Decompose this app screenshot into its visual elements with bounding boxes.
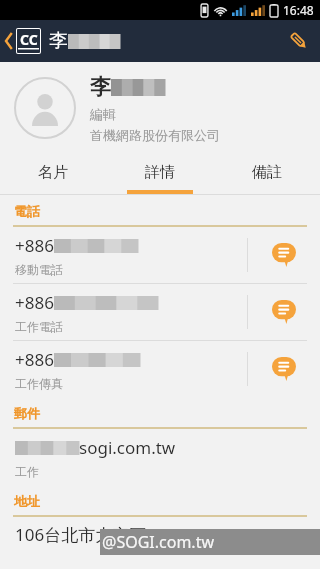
- staticText: sogi.com.tw: [79, 436, 176, 459]
- staticText: +886: [15, 348, 54, 371]
- button[interactable]: 備註: [213, 154, 320, 190]
- staticText: 編輯: [90, 106, 116, 122]
- staticText: 106台北市大安區: [15, 523, 147, 546]
- staticText: 李: [90, 74, 111, 100]
- staticText: 工作傳真: [15, 376, 63, 391]
- button[interactable]: 李: [0, 62, 320, 154]
- staticText: +886: [15, 291, 54, 314]
- button[interactable]: +886: [0, 341, 320, 397]
- button[interactable]: Edit: [278, 20, 320, 62]
- staticText: @SOGI.com.tw: [102, 531, 214, 553]
- staticText: 備註: [252, 163, 282, 182]
- staticText: 詳情: [145, 163, 175, 182]
- button[interactable]: 106台北市大安區: [0, 517, 320, 557]
- button[interactable]: 詳情: [106, 154, 213, 190]
- staticText: 首機網路股份有限公司: [90, 127, 220, 143]
- button[interactable]: 名片: [0, 154, 106, 190]
- staticText: 郵件: [14, 405, 40, 421]
- staticText: CC: [20, 30, 38, 49]
- button[interactable]: Send message: [248, 227, 320, 283]
- button[interactable]: +886: [0, 284, 320, 340]
- staticText: 名片: [38, 163, 68, 182]
- button[interactable]: +886: [0, 227, 320, 283]
- staticText: 地址: [14, 493, 40, 509]
- staticText: 工作電話: [15, 319, 63, 334]
- staticText: 電話: [14, 203, 40, 219]
- staticText: 李: [49, 29, 68, 53]
- button[interactable]: Back: [0, 22, 43, 60]
- button[interactable]: sogi.com.tw: [0, 429, 320, 485]
- staticText: 工作: [15, 464, 39, 479]
- button[interactable]: Send message: [248, 341, 320, 397]
- staticText: +886: [15, 234, 54, 257]
- button[interactable]: Send message: [248, 284, 320, 340]
- staticText: 移動電話: [15, 262, 63, 277]
- staticText: 16:48: [283, 2, 314, 18]
